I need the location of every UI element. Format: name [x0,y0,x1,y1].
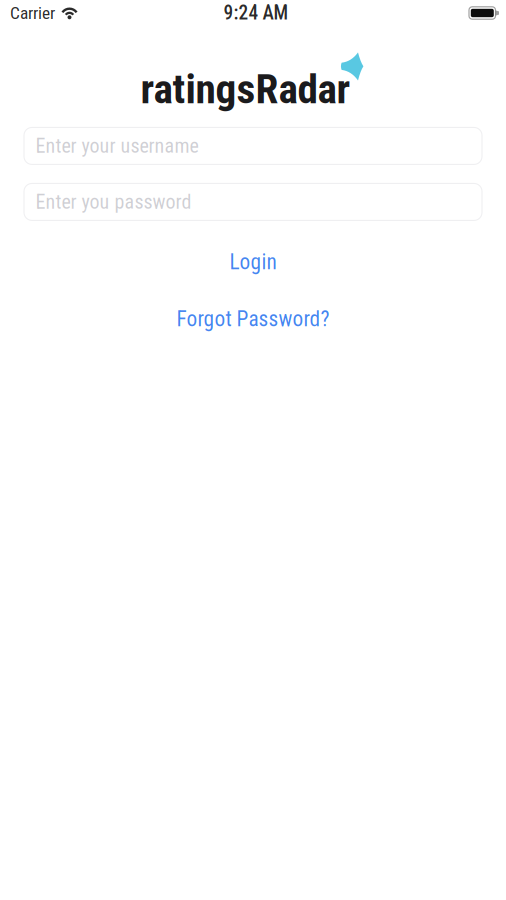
staticText: Enter your username [35,134,198,158]
button[interactable]: Enter your username [24,127,482,164]
button[interactable]: Login [213,249,292,274]
staticText: Forgot Password? [176,306,329,331]
staticText: Enter you password [35,190,191,214]
staticText: Login [229,249,276,274]
button[interactable]: Forgot Password? [160,306,345,331]
button[interactable]: Enter you password [24,183,482,220]
staticText: ratingsRadar [140,65,350,113]
staticText: 9:24 AM [223,2,288,24]
staticText: Carrier [10,3,55,23]
